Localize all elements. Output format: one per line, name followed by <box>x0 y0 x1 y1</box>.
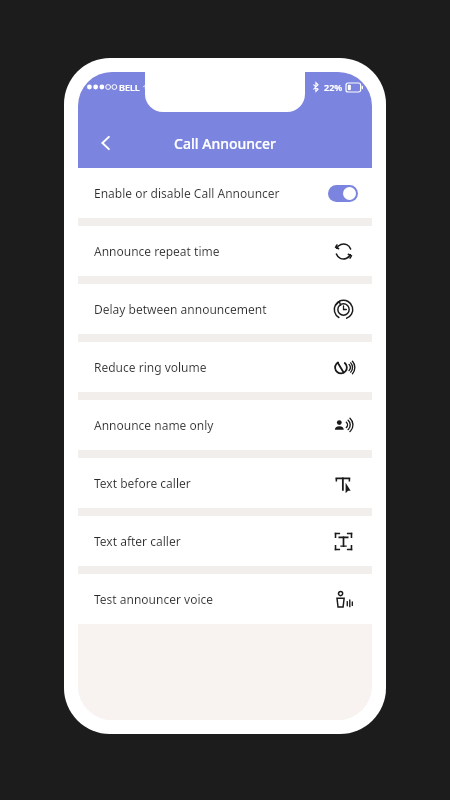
staticText: Text before caller <box>94 475 328 491</box>
staticText: Text after caller <box>94 533 328 549</box>
staticText: Delay between announcement <box>94 301 328 317</box>
staticText: BELL <box>119 81 140 93</box>
button[interactable]: Back <box>88 125 124 161</box>
button[interactable]: Announce name <box>328 410 358 440</box>
staticText: Test announcer voice <box>94 591 328 607</box>
button[interactable]: Reduce ring volume <box>78 342 372 392</box>
button[interactable]: Text after caller <box>328 526 358 556</box>
button[interactable]: Text after caller <box>78 516 372 566</box>
staticText: 22% <box>324 81 343 93</box>
staticText: Announce name only <box>94 417 328 433</box>
button[interactable]: Announce name only <box>78 400 372 450</box>
button[interactable]: Repeat <box>328 236 358 266</box>
button[interactable]: Test announcer voice <box>78 574 372 624</box>
button[interactable]: Ring volume <box>328 352 358 382</box>
button[interactable]: Enable Call Announcer <box>328 185 358 202</box>
button[interactable]: Text before caller <box>78 458 372 508</box>
button[interactable]: Text before caller <box>328 468 358 498</box>
button[interactable]: Enable or disable Call Announcer <box>78 168 372 218</box>
staticText: Call Announcer <box>174 134 276 153</box>
staticText: Enable or disable Call Announcer <box>94 185 328 201</box>
button[interactable]: Delay between announcement <box>78 284 372 334</box>
staticText: Announce repeat time <box>94 243 328 259</box>
staticText: Reduce ring volume <box>94 359 328 375</box>
button[interactable]: Announce repeat time <box>78 226 372 276</box>
button[interactable]: Delay timer <box>328 294 358 324</box>
button[interactable]: Test voice <box>328 584 358 614</box>
